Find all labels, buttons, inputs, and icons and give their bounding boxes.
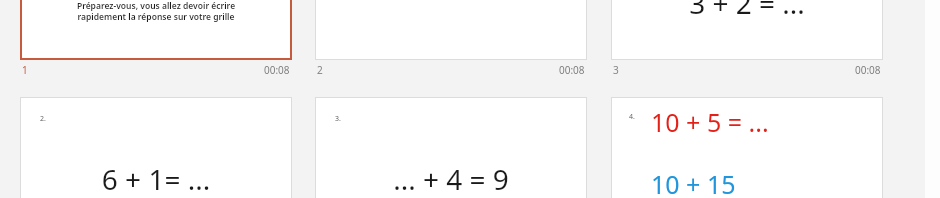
button[interactable]: 4. xyxy=(611,97,883,198)
button[interactable]: 3 xyxy=(611,62,883,78)
button[interactable] xyxy=(315,0,587,60)
staticText: ... + 4 = 9 xyxy=(326,160,576,198)
button[interactable]: Préparez-vous, vous allez devoir écrire … xyxy=(20,0,292,60)
button[interactable]: 2. xyxy=(20,97,292,198)
button[interactable]: 2 xyxy=(315,62,587,78)
staticText: 10 + 15 xyxy=(651,167,736,198)
staticText: 3 xyxy=(613,63,619,77)
staticText: 2. xyxy=(40,114,46,124)
staticText: 00:08 xyxy=(264,63,290,77)
staticText: 6 + 1= ... xyxy=(31,160,281,198)
staticText: 2 xyxy=(317,63,323,77)
button[interactable]: 3 + 2 = ... xyxy=(611,0,883,60)
staticText: 10 + 5 = ... xyxy=(651,105,769,139)
staticText: 4. xyxy=(629,112,635,122)
staticText: 00:08 xyxy=(855,63,881,77)
button[interactable]: 1 xyxy=(20,62,292,78)
staticText: Préparez-vous, vous allez devoir écrire … xyxy=(31,0,281,22)
staticText: 00:08 xyxy=(559,63,585,77)
staticText: 3 + 2 = ... xyxy=(622,0,872,22)
staticText: 1 xyxy=(22,63,28,77)
staticText: 3. xyxy=(335,114,341,124)
button[interactable]: 3. xyxy=(315,97,587,198)
